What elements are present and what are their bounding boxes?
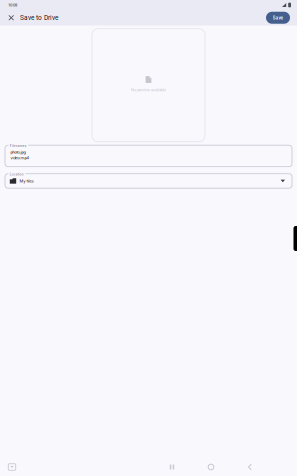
button[interactable]: Recents	[159, 460, 185, 474]
staticText: 10:08	[8, 3, 17, 7]
button[interactable]: Close	[4, 10, 18, 25]
button[interactable]: Back	[237, 460, 263, 474]
staticText: My files	[19, 178, 33, 183]
staticText: photo.jpg	[10, 150, 25, 155]
button[interactable]: Save	[266, 12, 290, 24]
staticText: Save to Drive	[20, 14, 58, 22]
staticText: Location	[10, 172, 24, 176]
button[interactable]: Hide keyboard	[2, 460, 22, 474]
staticText: Save	[272, 15, 283, 20]
staticText: Filenames	[10, 144, 27, 148]
button[interactable]: Location	[5, 174, 292, 188]
button[interactable]: Home	[198, 460, 224, 474]
staticText: video.mp4	[10, 155, 28, 160]
staticText: No preview available	[131, 87, 166, 92]
